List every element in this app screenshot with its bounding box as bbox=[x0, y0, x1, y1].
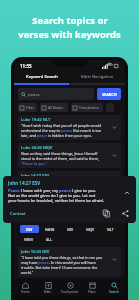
button[interactable]: Home bbox=[14, 279, 37, 297]
staticText: NKJV bbox=[86, 227, 95, 232]
button[interactable]: Expand verse bbox=[110, 151, 118, 159]
button[interactable]: All Books: All bbox=[40, 103, 68, 112]
staticText: Peace I leave with you; my peace I give … bbox=[8, 188, 122, 203]
staticText: Touchpoints bbox=[61, 290, 79, 294]
button[interactable]: John 14:27 ESV bbox=[18, 171, 121, 189]
staticText: John 14:27 ESV bbox=[8, 180, 41, 186]
button[interactable]: Context bbox=[8, 210, 28, 218]
staticText: Translations: 14 bbox=[79, 105, 101, 110]
staticText: ESV bbox=[26, 227, 33, 232]
staticText: Filters bbox=[26, 105, 35, 110]
button[interactable]: Search bbox=[103, 279, 125, 297]
staticText: Peace I leave with you; my peace I give … bbox=[21, 179, 110, 184]
staticText: John 14:27 ESV bbox=[21, 173, 50, 178]
staticText: SEARCH bbox=[102, 92, 117, 97]
staticText: Search bbox=[109, 290, 119, 294]
staticText: NRSV bbox=[24, 237, 34, 242]
staticText: "How I wish today that you of all people… bbox=[21, 123, 110, 138]
button[interactable]: NASB bbox=[41, 225, 59, 233]
button[interactable]: Translations: 14 bbox=[71, 103, 103, 112]
staticText: "I have told you these things, so that i… bbox=[21, 255, 110, 275]
staticText: Luke 19:42 NLT bbox=[21, 117, 51, 122]
staticText: Context bbox=[10, 211, 26, 217]
staticText: Now as they said these things, Jesus Him… bbox=[21, 151, 110, 166]
button[interactable]: peace bbox=[18, 88, 94, 100]
button[interactable]: Copy bbox=[101, 208, 112, 219]
staticText: John 16:33 NIV bbox=[21, 249, 50, 254]
button[interactable]: Luke 19:42 NLT bbox=[18, 115, 121, 140]
staticText: ALL bbox=[46, 237, 53, 242]
staticText: 11:55 bbox=[20, 63, 32, 69]
staticText: NASB bbox=[45, 227, 55, 232]
button[interactable]: Luke 24:36 NKJV bbox=[18, 143, 121, 168]
button[interactable]: Expand verse bbox=[110, 255, 118, 263]
button[interactable]: ESV bbox=[20, 225, 39, 233]
staticText: verses with keywords bbox=[18, 28, 121, 41]
button[interactable]: NKJV bbox=[81, 225, 99, 233]
button[interactable]: Keyword Search bbox=[14, 71, 69, 83]
staticText: NLT bbox=[107, 227, 114, 232]
button[interactable]: Bible Navigation bbox=[69, 71, 125, 83]
staticText: Home bbox=[21, 290, 30, 294]
staticText: Bible bbox=[44, 290, 52, 294]
button[interactable]: NLT bbox=[101, 225, 119, 233]
button[interactable]: Expand verse bbox=[110, 123, 118, 131]
staticText: Plans bbox=[88, 290, 96, 294]
staticText: Bible Navigation bbox=[81, 74, 114, 80]
button[interactable]: NRSV bbox=[20, 235, 38, 243]
button[interactable]: Plans bbox=[81, 279, 103, 297]
staticText: NIV bbox=[67, 227, 74, 232]
button[interactable]: Collapse verse bbox=[122, 188, 131, 197]
staticText: All Books: All bbox=[48, 105, 66, 110]
staticText: Search topics or bbox=[32, 14, 108, 27]
staticText: Luke 24:36 NKJV bbox=[21, 145, 53, 150]
button[interactable]: John 14:27 ESV bbox=[3, 176, 136, 223]
staticText: peace bbox=[28, 91, 40, 97]
button[interactable]: ALL bbox=[40, 235, 58, 243]
button[interactable]: Filters bbox=[18, 103, 37, 112]
button[interactable]: SEARCH bbox=[97, 88, 121, 100]
staticText: Keyword Search bbox=[26, 74, 58, 80]
button[interactable]: Share bbox=[120, 208, 131, 219]
button[interactable]: NIV bbox=[61, 225, 79, 233]
button[interactable] bbox=[106, 103, 114, 112]
button[interactable]: Touchpoints bbox=[59, 279, 81, 297]
button[interactable]: Bible bbox=[37, 279, 59, 297]
